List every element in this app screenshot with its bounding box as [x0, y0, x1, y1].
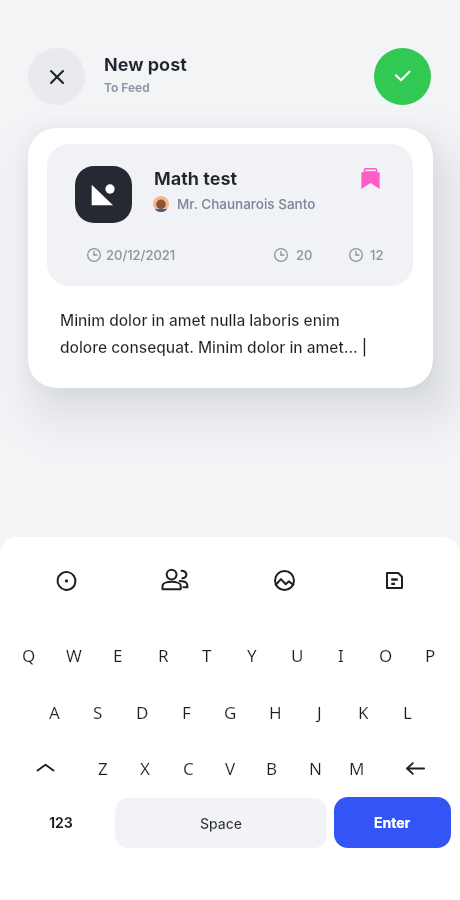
staticText: T [202, 644, 212, 667]
staticText: R [158, 644, 169, 667]
button[interactable]: E [98, 633, 138, 677]
staticText: dolore consequat. Minim dolor in amet...… [60, 338, 368, 357]
staticText: E [113, 644, 123, 667]
button[interactable]: O [366, 633, 406, 677]
staticText: X [140, 757, 150, 780]
staticText: New post [104, 54, 187, 76]
staticText: Y [247, 644, 257, 667]
button[interactable]: Close [28, 48, 85, 105]
staticText: S [93, 701, 103, 724]
staticText: U [291, 644, 304, 667]
button[interactable]: Post [374, 48, 431, 105]
button[interactable]: A [34, 690, 74, 734]
staticText: N [309, 757, 322, 780]
staticText: J [317, 701, 322, 724]
staticText: 20/12/2021 [106, 247, 176, 263]
staticText: Z [98, 757, 108, 780]
button[interactable]: Location [42, 557, 90, 605]
staticText: C [183, 757, 194, 780]
button[interactable]: 123 [36, 797, 86, 848]
staticText: 20 [296, 247, 313, 263]
button[interactable]: Image [260, 556, 308, 604]
staticText: Mr. Chaunarois Santo [177, 196, 316, 212]
staticText: Minim dolor in amet nulla laboris enim [60, 311, 340, 330]
button[interactable]: B [252, 746, 292, 790]
button[interactable]: M [337, 746, 377, 790]
button[interactable]: U [277, 633, 317, 677]
button[interactable]: People [151, 556, 199, 604]
button[interactable]: D [122, 690, 162, 734]
button[interactable]: T [187, 633, 227, 677]
staticText: A [49, 701, 60, 724]
button[interactable]: P [410, 633, 450, 677]
staticText: L [403, 701, 412, 724]
button[interactable]: Q [9, 633, 49, 677]
button[interactable]: Shift [23, 746, 67, 790]
button[interactable]: K [343, 690, 383, 734]
button[interactable]: X [125, 746, 165, 790]
button[interactable]: Bookmark [353, 161, 387, 195]
button[interactable]: Y [232, 633, 272, 677]
button[interactable]: H [255, 690, 295, 734]
staticText: 12 [370, 247, 384, 263]
button[interactable]: Backspace [393, 746, 437, 790]
staticText: G [224, 701, 237, 724]
staticText: K [358, 701, 369, 724]
staticText: V [225, 757, 236, 780]
button[interactable]: I [321, 633, 361, 677]
button[interactable]: Enter [334, 797, 451, 848]
button[interactable]: Space [115, 798, 327, 848]
staticText: D [136, 701, 149, 724]
button[interactable]: V [210, 746, 250, 790]
button[interactable]: F [166, 690, 206, 734]
staticText: F [182, 701, 191, 724]
staticText: M [349, 757, 365, 780]
button[interactable]: N [295, 746, 335, 790]
button[interactable]: C [168, 746, 208, 790]
staticText: B [266, 757, 278, 780]
staticText: O [379, 644, 393, 667]
staticText: Q [22, 644, 36, 667]
button[interactable]: L [387, 690, 427, 734]
staticText: To Feed [104, 80, 150, 95]
button[interactable]: S [78, 690, 118, 734]
staticText: Enter [374, 814, 411, 831]
button[interactable]: G [210, 690, 250, 734]
staticText: H [269, 701, 282, 724]
staticText: 123 [49, 814, 73, 831]
button[interactable]: Document [370, 556, 418, 604]
button[interactable]: W [54, 633, 94, 677]
button[interactable]: J [299, 690, 339, 734]
staticText: W [66, 644, 82, 667]
staticText: I [338, 644, 344, 667]
staticText: Math test [154, 168, 238, 190]
staticText: P [425, 644, 436, 667]
button[interactable]: Z [83, 746, 123, 790]
button[interactable]: R [143, 633, 183, 677]
staticText: Space [200, 815, 243, 832]
